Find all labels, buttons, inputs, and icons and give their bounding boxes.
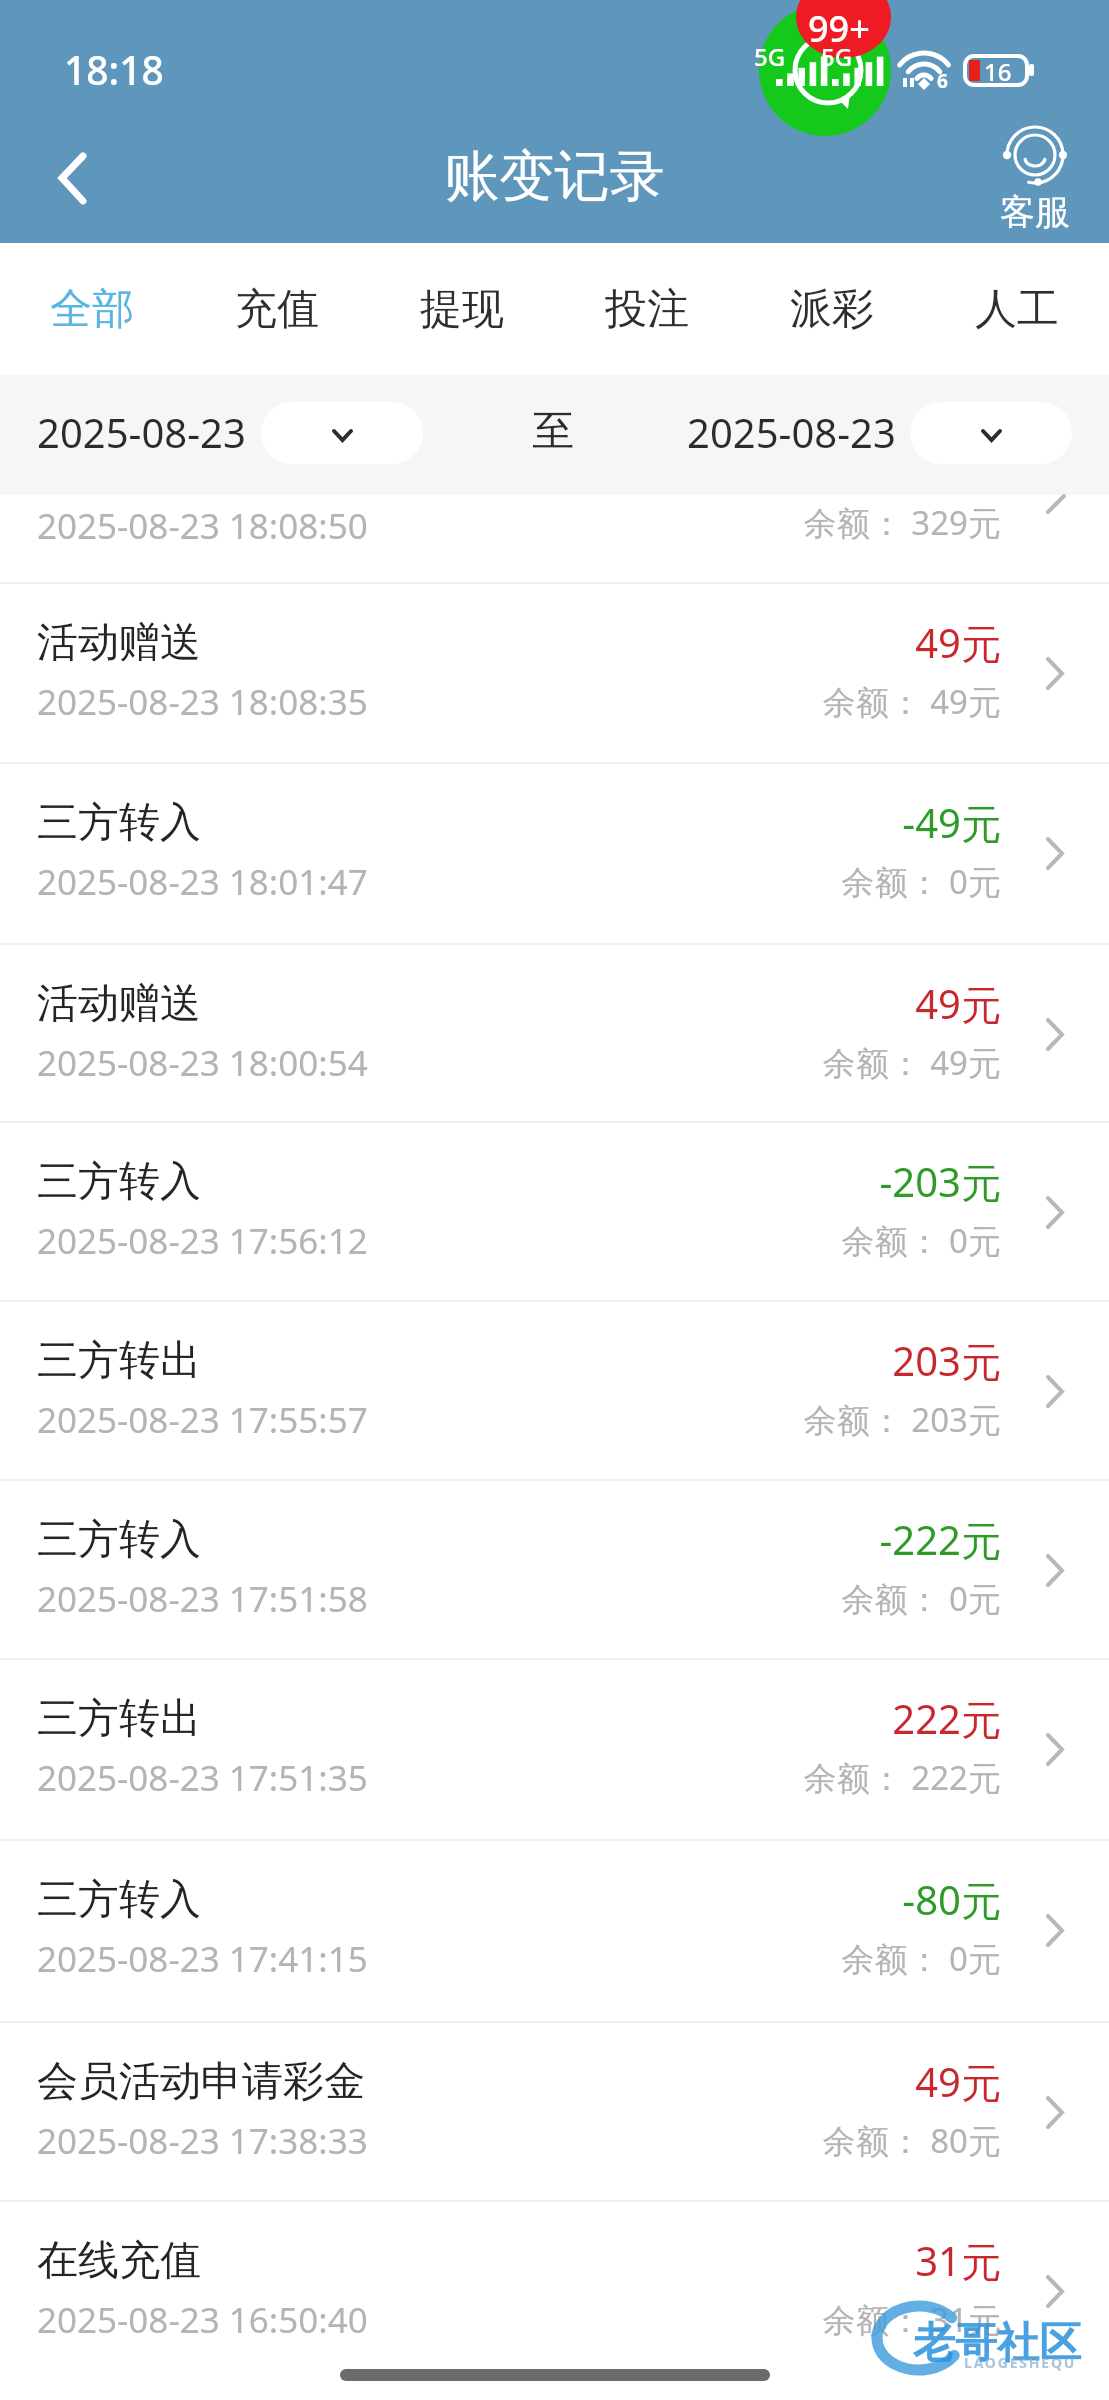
staticText: 在线充值: [37, 2235, 201, 2287]
staticText: 222元: [0, 1691, 1001, 1746]
button[interactable]: 投注: [554, 243, 739, 375]
button[interactable]: 人工: [924, 243, 1109, 375]
staticText: LAOGESHEQU: [964, 2353, 1077, 2372]
staticText: -222元: [0, 1512, 1001, 1567]
staticText: 老哥社区: [913, 2317, 1081, 2370]
button[interactable]: 三方转入: [0, 1481, 1109, 1658]
staticText: 账变记录: [0, 142, 1109, 211]
staticText: 余额： 0元: [0, 859, 1001, 904]
button[interactable]: 会员活动申请彩金: [0, 2023, 1109, 2200]
staticText: 至: [532, 405, 574, 458]
staticText: 18:18: [64, 43, 164, 96]
staticText: 5G: [754, 40, 786, 73]
button[interactable]: 三方转出: [0, 1660, 1109, 1839]
button[interactable]: 提现: [369, 243, 554, 375]
staticText: 余额： 0元: [0, 1576, 1001, 1621]
staticText: 余额： 31元: [0, 2297, 1001, 2342]
staticText: 提现: [420, 283, 504, 336]
staticText: 2025-08-23 18:08:35: [37, 678, 368, 726]
staticText: 49元: [0, 2054, 1001, 2109]
staticText: 49元: [0, 615, 1001, 670]
staticText: 2025-08-23 17:56:12: [37, 1217, 368, 1265]
staticText: 派彩: [790, 283, 874, 336]
staticText: 三方转入: [37, 1156, 201, 1208]
button[interactable]: Select date: [261, 402, 423, 464]
staticText: 三方转出: [37, 1335, 201, 1387]
staticText: -203元: [0, 1154, 1001, 1209]
button[interactable]: 三方转入: [0, 1841, 1109, 2021]
staticText: 客服: [1000, 190, 1070, 234]
staticText: 余额： 222元: [0, 1755, 1001, 1800]
staticText: 31元: [0, 2233, 1001, 2288]
staticText: 2025-08-23: [687, 405, 896, 459]
staticText: 2025-08-23 16:50:40: [37, 2296, 368, 2344]
staticText: 三方转入: [37, 797, 201, 849]
button[interactable]: 活动赠送: [0, 584, 1109, 762]
staticText: 三方转入: [37, 1514, 201, 1566]
staticText: 16: [984, 55, 1012, 88]
staticText: 人工: [975, 283, 1059, 336]
button[interactable]: 充值: [184, 243, 369, 375]
button[interactable]: Customer service: [975, 124, 1095, 234]
staticText: 余额： 0元: [0, 1936, 1001, 1981]
button[interactable]: 全部: [0, 243, 184, 375]
button[interactable]: 三方转入: [0, 1123, 1109, 1300]
staticText: -49元: [0, 795, 1001, 850]
staticText: 余额： 49元: [0, 679, 1001, 724]
button[interactable]: 派彩: [739, 243, 924, 375]
button[interactable]: Back: [22, 128, 118, 224]
staticText: 2025-08-23: [37, 405, 246, 459]
staticText: 余额： 203元: [0, 1397, 1001, 1442]
staticText: 三方转入: [37, 1874, 201, 1926]
button[interactable]: 三方转出: [0, 1302, 1109, 1479]
staticText: 49元: [0, 976, 1001, 1031]
button[interactable]: 活动赠送: [0, 945, 1109, 1121]
staticText: 活动赠送: [37, 617, 201, 669]
staticText: 余额： 49元: [0, 1040, 1001, 1085]
staticText: -80元: [0, 1872, 1001, 1927]
staticText: 会员活动申请彩金: [37, 2056, 365, 2108]
button[interactable]: 在线充值: [0, 2202, 1109, 2400]
staticText: 全部: [50, 283, 134, 336]
staticText: 2025-08-23 17:51:58: [37, 1575, 368, 1623]
staticText: 5G: [821, 40, 853, 73]
staticText: 2025-08-23 18:08:50: [37, 502, 368, 550]
staticText: 2025-08-23 17:38:33: [37, 2117, 368, 2165]
button[interactable]: 三方转入: [0, 764, 1109, 943]
button[interactable]: 2025-08-23 18:08:50: [0, 495, 1109, 582]
staticText: 活动赠送: [37, 978, 201, 1030]
staticText: 余额： 0元: [0, 1218, 1001, 1263]
button[interactable]: Select date: [910, 402, 1072, 464]
staticText: 2025-08-23 18:01:47: [37, 858, 368, 906]
staticText: 余额： 329元: [0, 500, 1001, 545]
staticText: 充值: [235, 283, 319, 336]
staticText: 203元: [0, 1333, 1001, 1388]
staticText: 三方转出: [37, 1693, 201, 1745]
staticText: 99+: [808, 4, 870, 53]
staticText: 余额： 80元: [0, 2118, 1001, 2163]
staticText: 6: [937, 68, 948, 94]
staticText: 2025-08-23 18:00:54: [37, 1039, 368, 1087]
staticText: 2025-08-23 17:41:15: [37, 1935, 368, 1983]
staticText: 2025-08-23 17:55:57: [37, 1396, 368, 1444]
staticText: 投注: [605, 283, 689, 336]
staticText: 2025-08-23 17:51:35: [37, 1754, 368, 1802]
